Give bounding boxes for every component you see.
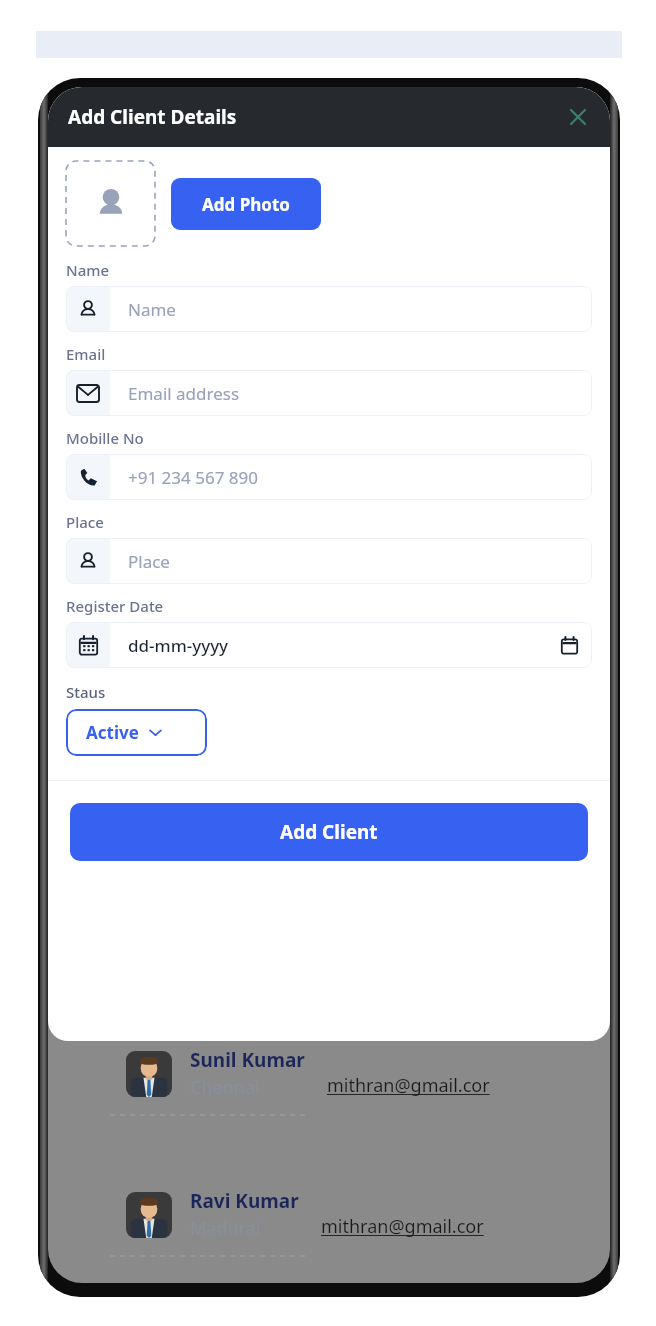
staticText: Add Client Details <box>68 104 237 130</box>
button[interactable]: Name <box>66 286 592 332</box>
staticText: Register Date <box>66 596 164 616</box>
staticText: +91 234 567 890 <box>128 466 592 489</box>
staticText: Name <box>66 260 110 280</box>
staticText: Chennai <box>190 1075 260 1100</box>
button[interactable]: Photo placeholder <box>66 161 155 246</box>
staticText: mithran@gmail.cor <box>327 1073 490 1098</box>
staticText: Active <box>86 721 139 744</box>
staticText: mithran@gmail.cor <box>321 1214 484 1239</box>
staticText: Email address <box>128 382 592 405</box>
button[interactable]: Email address <box>66 370 592 416</box>
staticText: Place <box>66 512 104 532</box>
button[interactable]: Place <box>66 538 592 584</box>
button[interactable]: Ravi Kumar <box>126 1188 610 1241</box>
staticText: Place <box>128 550 592 573</box>
staticText: Email <box>66 344 106 364</box>
staticText: Add Photo <box>202 193 290 216</box>
staticText: Name <box>128 298 592 321</box>
staticText: Sunil Kumar <box>190 1047 305 1073</box>
button[interactable]: Active <box>66 709 207 756</box>
staticText: Ravi Kumar <box>190 1188 299 1214</box>
staticText: Madurai <box>190 1216 261 1241</box>
button[interactable]: Sunil Kumar <box>126 1047 610 1100</box>
staticText: dd-mm-yyyy <box>128 634 561 657</box>
button[interactable]: Close <box>558 97 598 137</box>
staticText: Add Client <box>280 819 378 845</box>
staticText: Staus <box>66 682 106 702</box>
button[interactable]: Add Photo <box>171 178 321 230</box>
button[interactable]: +91 234 567 890 <box>66 454 592 500</box>
staticText: Mobille No <box>66 428 144 448</box>
button[interactable]: Add Client <box>70 803 588 861</box>
button[interactable]: dd-mm-yyyy <box>66 622 592 668</box>
